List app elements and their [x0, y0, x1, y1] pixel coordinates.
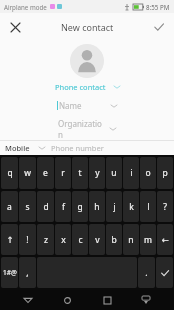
button[interactable]: z	[37, 224, 54, 255]
button[interactable]: w	[19, 157, 36, 189]
staticText: .	[145, 267, 148, 279]
button[interactable]: e	[37, 157, 54, 189]
button[interactable]: d	[37, 191, 54, 222]
staticText: Name	[59, 100, 105, 111]
button[interactable]: Add photo	[70, 44, 104, 78]
staticText: i	[130, 167, 133, 179]
button[interactable]: .	[138, 257, 155, 288]
button[interactable]: Switch keyboard	[135, 290, 157, 310]
button[interactable]: a	[1, 191, 18, 222]
staticText: !	[26, 234, 29, 246]
staticText: l	[147, 201, 150, 213]
button[interactable]: h	[89, 191, 105, 222]
button[interactable]: o	[140, 157, 156, 189]
staticText: Airplane mode	[4, 3, 47, 11]
button[interactable]: Backspace	[157, 224, 173, 255]
staticText: k	[129, 201, 134, 213]
staticText: d	[43, 201, 49, 213]
staticText: m	[144, 234, 152, 246]
button[interactable]: Recents	[96, 290, 118, 310]
staticText: n	[128, 234, 134, 246]
staticText: Mobile	[5, 143, 30, 153]
button[interactable]: Shift	[1, 224, 18, 255]
button[interactable]: p	[157, 157, 173, 189]
button[interactable]: Phone contact	[51, 81, 124, 93]
button[interactable]: y	[89, 157, 105, 189]
button[interactable]: f	[55, 191, 71, 222]
button[interactable]: t	[72, 157, 88, 189]
button[interactable]: 1#@	[1, 257, 18, 288]
staticText: g	[77, 201, 83, 213]
button[interactable]: i	[123, 157, 139, 189]
button[interactable]: !	[19, 224, 36, 255]
button[interactable]: g	[72, 191, 88, 222]
staticText: p	[162, 167, 168, 179]
staticText: z	[44, 234, 48, 246]
staticText: c	[78, 234, 83, 246]
button[interactable]: ,	[19, 257, 36, 288]
button[interactable]: r	[55, 157, 71, 189]
staticText: r	[61, 167, 65, 179]
staticText: ?	[163, 201, 167, 213]
staticText: 1#@	[3, 268, 17, 277]
button[interactable]: m	[140, 224, 156, 255]
button[interactable]: l	[140, 191, 156, 222]
button[interactable]: x	[55, 224, 71, 255]
button[interactable]: Save	[149, 17, 169, 37]
button[interactable]: u	[106, 157, 122, 189]
button[interactable]: Mobile	[0, 141, 174, 155]
button[interactable]: Close	[5, 17, 25, 37]
button[interactable]: Organization	[0, 118, 174, 140]
staticText: ,	[26, 267, 29, 279]
button[interactable]: Enter	[156, 257, 173, 288]
staticText: b	[111, 234, 117, 246]
staticText: a	[7, 201, 12, 213]
button[interactable]: n	[123, 224, 139, 255]
button[interactable]: c	[72, 224, 88, 255]
button[interactable]: b	[106, 224, 122, 255]
staticText: y	[95, 167, 100, 179]
staticText: e	[43, 167, 48, 179]
button[interactable]: Back	[17, 290, 39, 310]
button[interactable]: v	[89, 224, 105, 255]
button[interactable]: j	[106, 191, 122, 222]
staticText: t	[78, 167, 82, 179]
staticText: 8:55 PM	[146, 3, 170, 11]
staticText: New contact	[61, 21, 114, 33]
button[interactable]: ?	[157, 191, 173, 222]
button[interactable]: q	[1, 157, 18, 189]
staticText: s	[25, 201, 30, 213]
staticText: Organization	[58, 118, 104, 140]
button[interactable]: k	[123, 191, 139, 222]
button[interactable]: Name	[0, 100, 174, 111]
staticText: ←	[161, 235, 169, 245]
staticText: ↑	[6, 235, 14, 245]
staticText: h	[94, 201, 100, 213]
staticText: u	[111, 167, 117, 179]
staticText: x	[61, 234, 66, 246]
button[interactable]: Home	[56, 290, 78, 310]
button[interactable]: s	[19, 191, 36, 222]
staticText: j	[113, 201, 116, 213]
staticText: o	[145, 167, 151, 179]
staticText: q	[7, 167, 13, 179]
staticText: w	[24, 167, 31, 179]
staticText: f	[62, 201, 65, 213]
staticText: Phone contact	[55, 82, 106, 92]
staticText: Phone number	[51, 143, 104, 153]
staticText: v	[95, 234, 100, 246]
